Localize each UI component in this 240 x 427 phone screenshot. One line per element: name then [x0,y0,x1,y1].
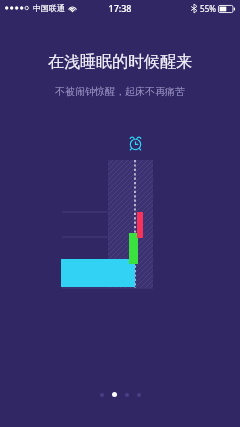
button[interactable] [100,393,104,397]
staticText: 不被闹钟惊醒，起床不再痛苦 [55,85,185,98]
button[interactable]: Alarm [128,136,143,151]
staticText: 中国联通 [33,3,65,13]
button[interactable] [125,393,129,397]
staticText: 在浅睡眠的时候醒来 [48,52,192,72]
button[interactable] [137,393,141,397]
button[interactable] [112,392,117,397]
staticText: 55% [200,3,216,14]
staticText: 17:38 [108,2,132,14]
